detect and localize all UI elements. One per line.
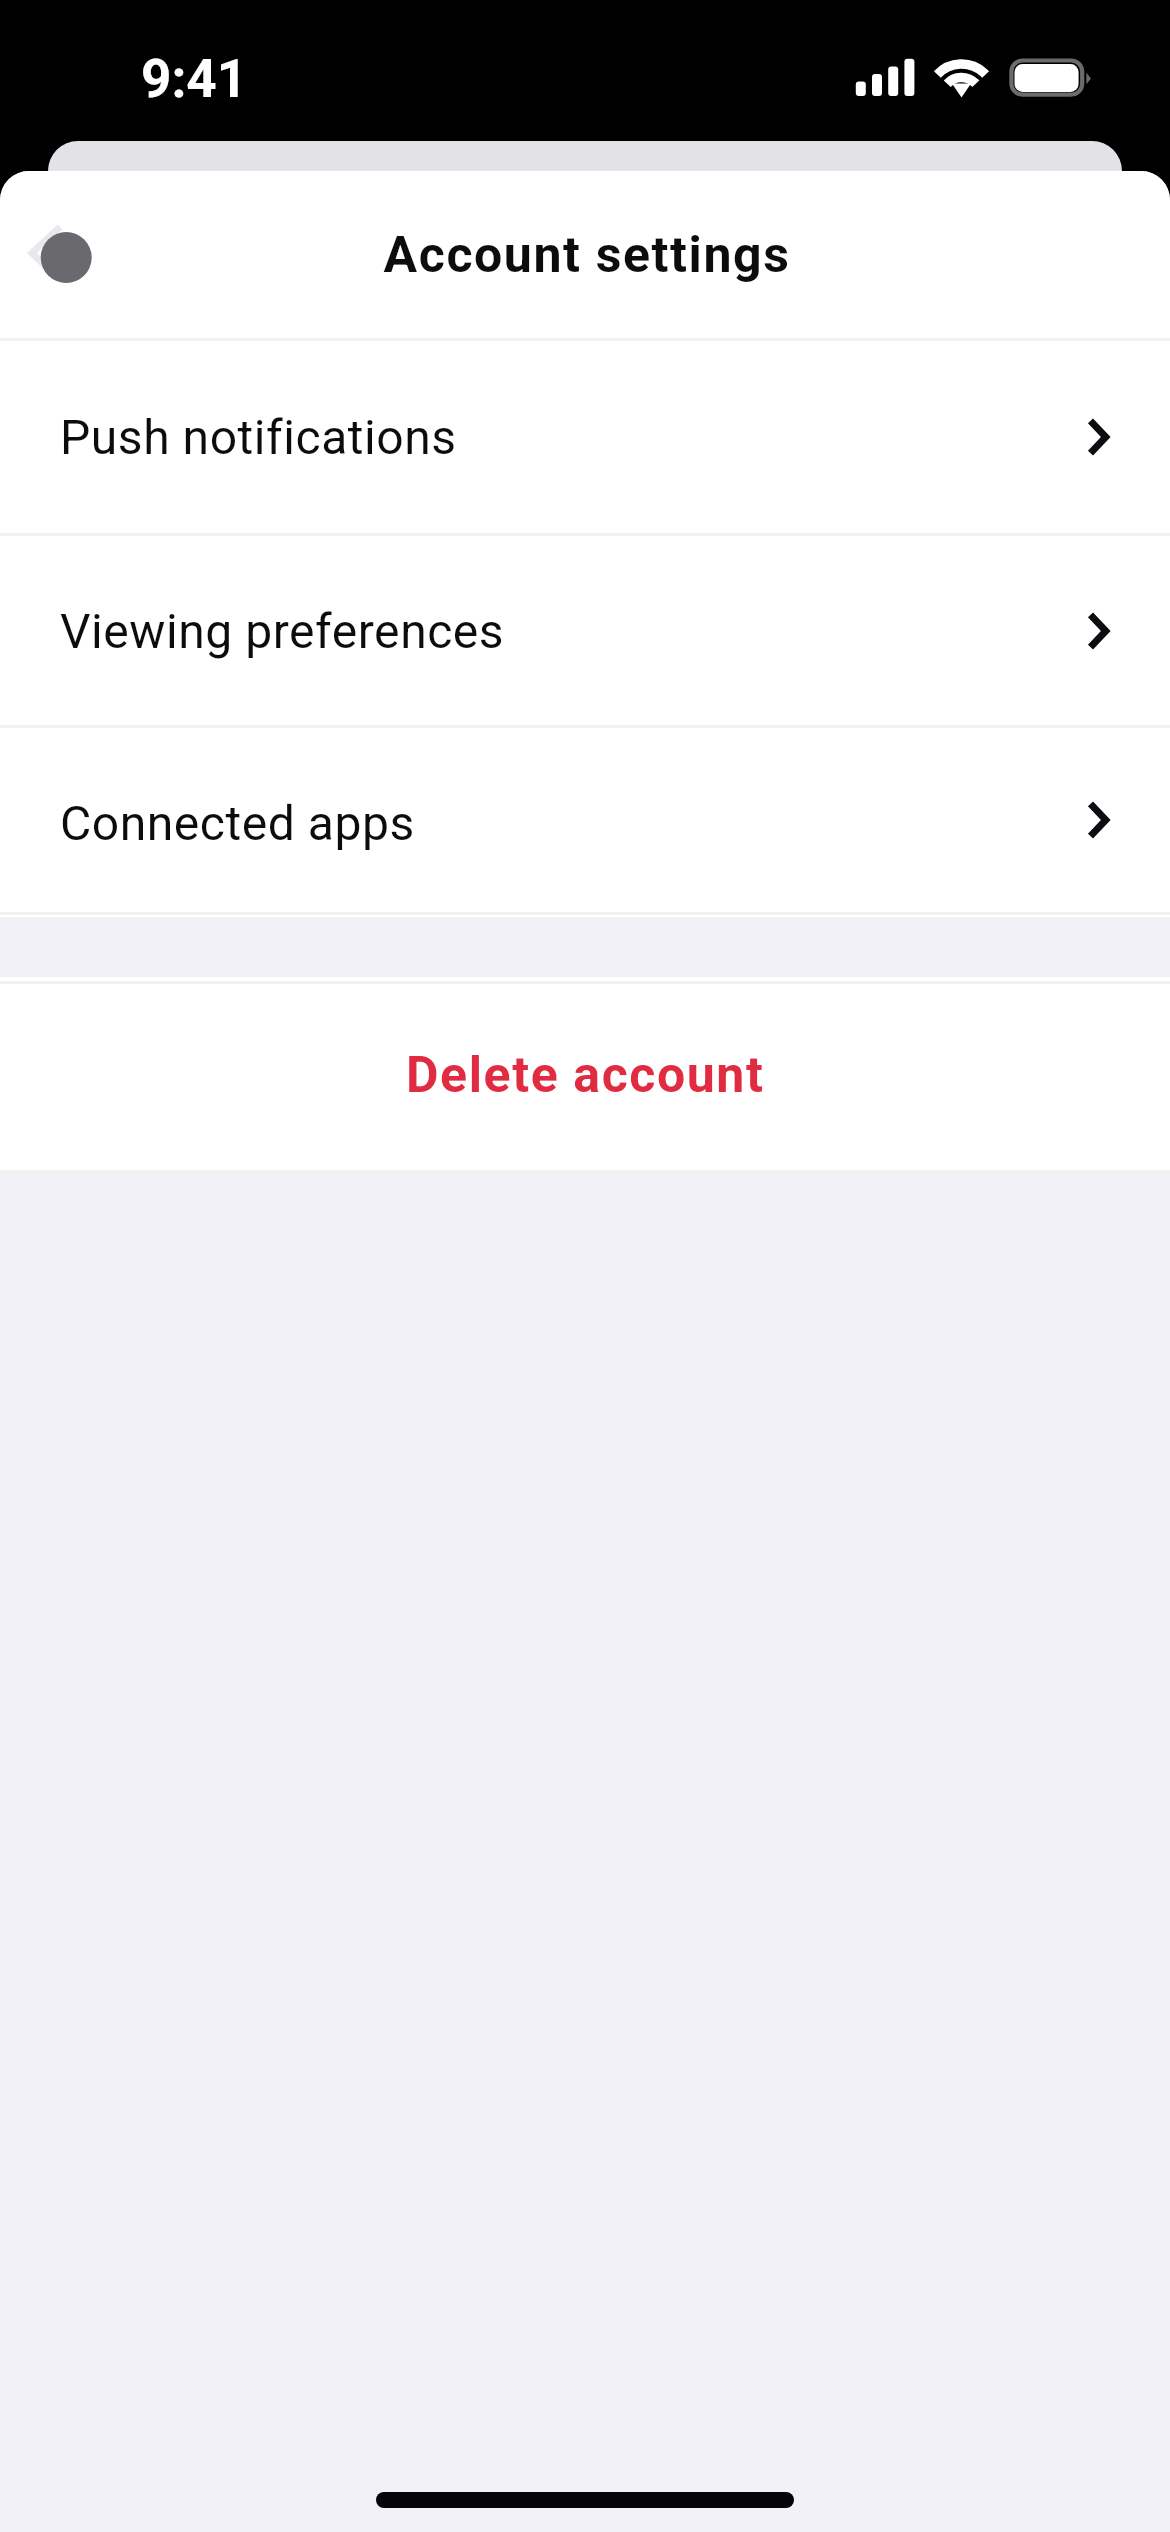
button[interactable]: Delete account xyxy=(0,984,1170,1170)
button[interactable]: Back xyxy=(12,207,112,307)
staticText: Viewing preferences xyxy=(60,603,505,659)
staticText: Connected apps xyxy=(60,795,415,851)
button[interactable]: Connected apps xyxy=(0,728,1170,912)
staticText: Push notifications xyxy=(60,409,457,465)
button[interactable]: Viewing preferences xyxy=(0,536,1170,725)
staticText: Delete account xyxy=(406,1046,765,1105)
staticText: Account settings xyxy=(2,226,1170,285)
staticText: 9:41 xyxy=(141,48,248,110)
button[interactable]: Push notifications xyxy=(0,341,1170,533)
